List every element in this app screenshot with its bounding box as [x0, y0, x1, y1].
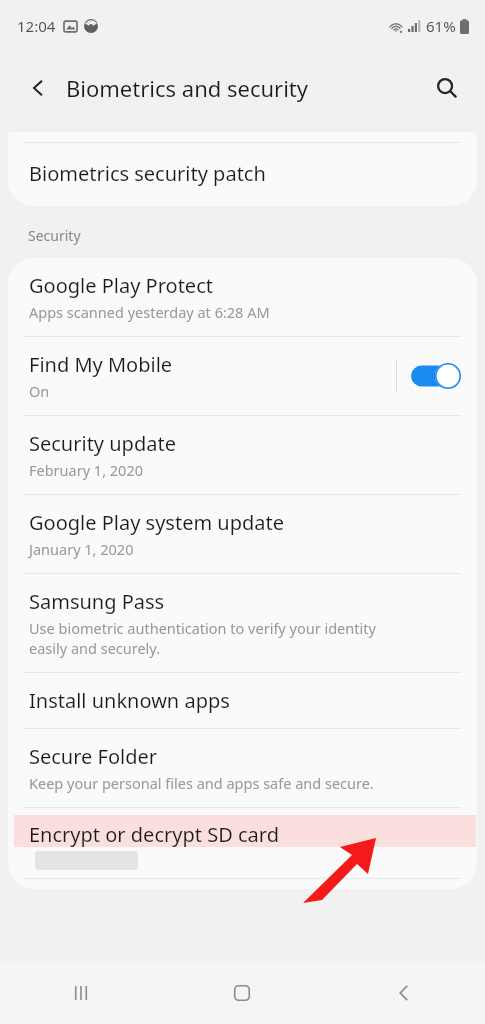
staticText: Encrypt or decrypt SD card [29, 821, 279, 848]
button[interactable]: Encrypt or decrypt SD card [8, 808, 477, 864]
staticText: 61% [426, 16, 456, 36]
button[interactable]: Install unknown apps [8, 673, 477, 728]
staticText: Biometrics security patch [29, 160, 266, 187]
button[interactable]: Google Play system update [8, 495, 477, 573]
button[interactable]: Google Play Protect [8, 258, 477, 336]
button[interactable]: Search [427, 68, 467, 108]
staticText: Biometrics and security [66, 73, 309, 103]
staticText: Keep your personal files and apps safe a… [29, 773, 374, 793]
button[interactable]: Find My Mobile toggle [411, 363, 461, 389]
staticText: Google Play system update [29, 509, 285, 536]
button[interactable]: Back [323, 962, 485, 1024]
staticText: Install unknown apps [29, 687, 230, 714]
button[interactable]: Recents [0, 962, 161, 1024]
staticText: February 1, 2020 [29, 460, 143, 480]
button[interactable]: Security update [8, 416, 477, 494]
button[interactable]: Secure Folder [8, 729, 477, 807]
staticText: Secure Folder [29, 743, 158, 770]
staticText: Find My Mobile [29, 351, 173, 378]
button[interactable]: Find My Mobile [8, 337, 477, 415]
staticText: January 1, 2020 [29, 539, 134, 559]
staticText: Security update [29, 430, 176, 457]
staticText: 12:04 [17, 16, 56, 36]
staticText: Google Play Protect [29, 272, 213, 299]
staticText: Security [28, 226, 81, 245]
staticText: On [29, 381, 50, 401]
staticText: Samsung Pass [29, 588, 165, 615]
button[interactable]: Home [161, 962, 323, 1024]
button[interactable]: Back [20, 70, 56, 106]
staticText: Use biometric authentication to verify y… [29, 618, 376, 658]
button[interactable]: Samsung Pass [8, 574, 477, 672]
staticText: Apps scanned yesterday at 6:28 AM [29, 302, 270, 322]
button[interactable]: Biometrics security patch [8, 132, 477, 206]
